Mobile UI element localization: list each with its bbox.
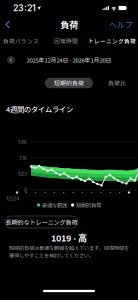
staticText: 負荷比: [108, 79, 126, 87]
staticText: ヘルプ: [109, 19, 133, 30]
button[interactable]: 短期的負荷: [45, 78, 93, 88]
button[interactable]: 長期的なトレーニング負荷: [5, 216, 78, 228]
staticText: 2025年12月24日 - 2026年1月20日: [26, 56, 111, 64]
button[interactable]: Previous period: [4, 53, 18, 67]
staticText: トレーニング負荷: [88, 37, 136, 45]
staticText: 回復時間: [54, 37, 78, 45]
staticText: 最適な範囲: [42, 201, 67, 209]
staticText: 負荷: [60, 18, 78, 31]
button[interactable]: 回復時間: [49, 34, 83, 48]
staticText: 0: [24, 187, 27, 193]
staticText: 23:21: [13, 3, 36, 13]
staticText: 短期的負荷: [54, 79, 84, 87]
staticText: 長期的なトレーニング負荷: [5, 218, 77, 226]
button[interactable]: 負荷比: [93, 78, 138, 88]
staticText: 短期的負荷は最適な範囲を超えています。回復時間を確保しやすことを検討してください…: [9, 244, 129, 259]
staticText: 短期的負荷: [76, 201, 101, 209]
staticText: 負荷バランス: [3, 37, 39, 45]
staticText: 12/24: [6, 195, 19, 202]
button[interactable]: トレーニング負荷: [87, 34, 137, 48]
staticText: 523: [18, 171, 27, 177]
staticText: 4週間のタイムライン: [6, 104, 73, 114]
staticText: 1019 - 高: [51, 231, 87, 244]
button[interactable]: ヘルプ: [106, 16, 136, 33]
staticText: 1.1k: [19, 155, 27, 161]
button[interactable]: Back: [2, 17, 13, 32]
staticText: 1.6k: [18, 139, 27, 145]
button[interactable]: 負荷バランス: [0, 34, 42, 48]
